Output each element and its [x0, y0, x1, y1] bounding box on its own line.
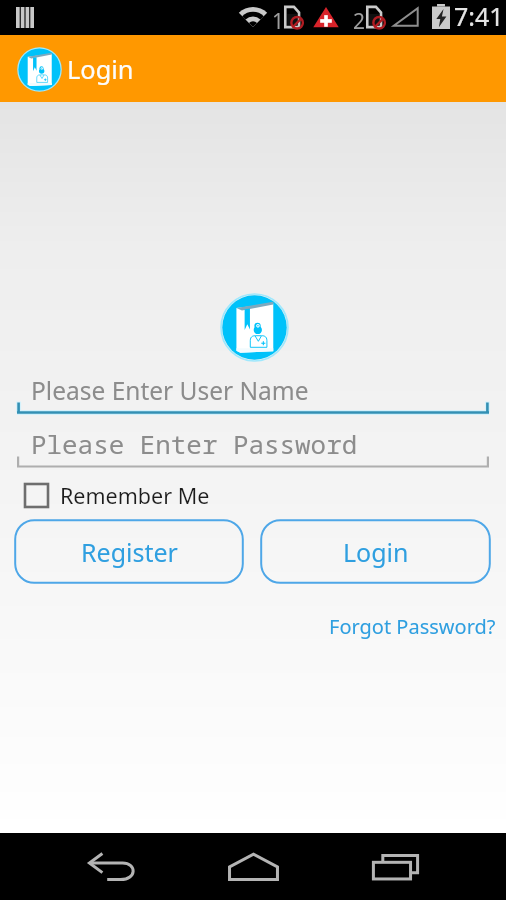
- staticText: 7:41: [454, 0, 504, 33]
- button[interactable]: Login: [260, 519, 491, 584]
- staticText: Login: [343, 535, 409, 569]
- button[interactable]: Please Enter User Name: [17, 370, 489, 415]
- button[interactable]: Recent apps: [359, 843, 431, 891]
- button[interactable]: Remember Me: [25, 481, 210, 510]
- staticText: Remember Me: [60, 481, 210, 510]
- staticText: Login: [67, 52, 134, 87]
- staticText: 1: [272, 7, 285, 36]
- button[interactable]: Back: [76, 843, 148, 891]
- button[interactable]: Forgot Password?: [323, 609, 502, 644]
- staticText: Please Enter User Name: [31, 374, 309, 407]
- button[interactable]: Please Enter Password: [17, 424, 489, 469]
- staticText: Register: [81, 535, 178, 569]
- button[interactable]: Home: [217, 843, 289, 891]
- staticText: Please Enter Password: [31, 426, 358, 461]
- staticText: 2: [353, 7, 366, 36]
- button[interactable]: Register: [14, 519, 244, 584]
